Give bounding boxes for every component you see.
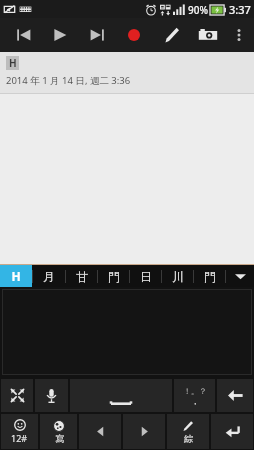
button[interactable]: 甘 — [66, 265, 97, 287]
button[interactable]: Move cursor right — [123, 414, 165, 449]
button[interactable]: Play — [42, 18, 78, 52]
button[interactable]: Previous — [6, 18, 42, 52]
staticText: H — [11, 268, 21, 284]
button[interactable]: Record — [115, 18, 152, 52]
button[interactable]: H — [0, 265, 32, 287]
button[interactable]: 月 — [33, 265, 65, 287]
staticText: H — [9, 56, 17, 70]
staticText: ， — [191, 396, 199, 406]
staticText: 2014 年 1 月 14 日, 週二 3:36 — [6, 74, 131, 87]
staticText: 門 — [108, 269, 120, 284]
staticText: 日 — [140, 269, 152, 284]
staticText: 門 — [204, 269, 216, 284]
button[interactable]: Camera — [189, 18, 226, 52]
button[interactable]: 日 — [130, 265, 161, 287]
button[interactable]: Punctuation — [174, 379, 215, 412]
button[interactable]: Change language — [40, 414, 77, 449]
button[interactable]: More input modes — [226, 265, 254, 287]
button[interactable]: More options — [226, 18, 252, 52]
staticText: 綜 — [184, 433, 193, 444]
staticText: 寫 — [55, 433, 64, 444]
staticText: ！。？ — [183, 386, 207, 396]
button[interactable]: Expand keyboard — [1, 379, 33, 412]
staticText: 甘 — [76, 269, 88, 284]
staticText: 90% — [188, 3, 208, 17]
button[interactable]: 門 — [98, 265, 129, 287]
staticText: 3:37 — [229, 2, 251, 17]
button[interactable]: 門 — [194, 265, 225, 287]
staticText: 川 — [172, 269, 184, 284]
button[interactable]: Move cursor left — [79, 414, 121, 449]
button[interactable]: Enter — [211, 414, 253, 449]
button[interactable]: Next — [78, 18, 115, 52]
button[interactable]: Draw — [152, 18, 189, 52]
button[interactable]: Space — [70, 379, 172, 412]
button[interactable]: Symbols and numbers — [1, 414, 38, 449]
button[interactable]: Voice input — [35, 379, 68, 412]
button[interactable]: H — [0, 52, 254, 93]
staticText: 月 — [43, 269, 55, 284]
button[interactable]: Handwriting — [167, 414, 209, 449]
staticText: 12# — [11, 432, 28, 444]
button[interactable]: 川 — [162, 265, 193, 287]
button[interactable]: Backspace — [217, 379, 253, 412]
